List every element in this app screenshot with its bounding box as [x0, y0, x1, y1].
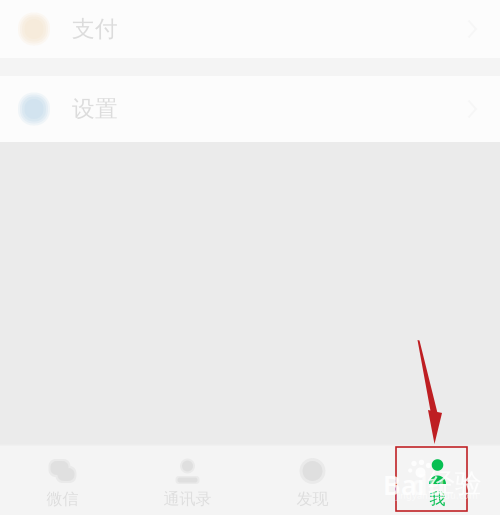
staticText: 发现: [296, 489, 328, 509]
button[interactable]: 支付: [0, 0, 500, 58]
staticText: 我: [429, 489, 445, 509]
button[interactable]: 我: [375, 446, 500, 515]
staticText: jingyan.baidu.com: [396, 489, 478, 501]
button[interactable]: 发现: [250, 446, 375, 515]
staticText: 支付: [72, 15, 118, 43]
button[interactable]: 设置: [0, 76, 500, 142]
button[interactable]: 微信: [0, 446, 125, 515]
button[interactable]: 通讯录: [125, 446, 250, 515]
staticText: 微信: [46, 489, 78, 509]
staticText: 设置: [72, 95, 118, 123]
staticText: Bai: [383, 467, 425, 502]
staticText: 通讯录: [163, 489, 211, 509]
staticText: du: [411, 467, 445, 502]
staticText: 经验: [428, 467, 482, 500]
